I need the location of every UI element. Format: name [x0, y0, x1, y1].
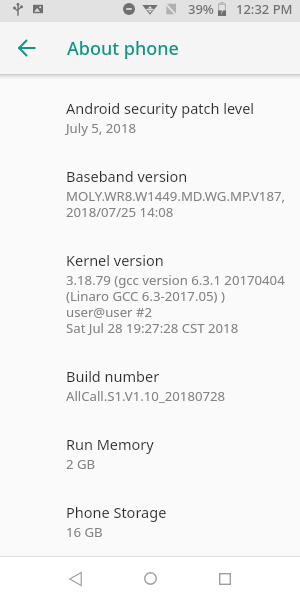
button[interactable]: Build number [0, 353, 300, 421]
staticText: About phone [67, 36, 179, 61]
staticText: Build number [66, 366, 160, 386]
button[interactable]: Android security patch level [0, 85, 300, 153]
button[interactable]: Home [125, 557, 175, 600]
button[interactable]: Back [50, 557, 100, 600]
staticText: Baseband version [66, 166, 188, 186]
staticText: Phone Storage [66, 502, 167, 522]
staticText: 39% [188, 0, 214, 18]
staticText: 3.18.79 (gcc version 6.3.1 20170404 (Lin… [66, 271, 285, 337]
button[interactable]: Navigate up [0, 22, 52, 74]
button[interactable]: Phone Storage [0, 489, 300, 556]
staticText: 12:32 PM [236, 0, 293, 18]
staticText: July 5, 2018 [66, 119, 136, 137]
button[interactable]: Kernel version [0, 237, 300, 353]
button[interactable]: Baseband version [0, 153, 300, 237]
button[interactable]: Recent apps [200, 557, 250, 600]
staticText: Run Memory [66, 434, 154, 454]
staticText: AllCall.S1.V1.10_20180728 [66, 387, 226, 405]
button[interactable]: Run Memory [0, 421, 300, 489]
staticText: Android security patch level [66, 98, 255, 118]
staticText: MOLY.WR8.W1449.MD.WG.MP.V187, 2018/07/25… [66, 187, 286, 221]
staticText: Kernel version [66, 250, 164, 270]
staticText: 16 GB [66, 523, 103, 540]
staticText: 2 GB [66, 455, 96, 473]
